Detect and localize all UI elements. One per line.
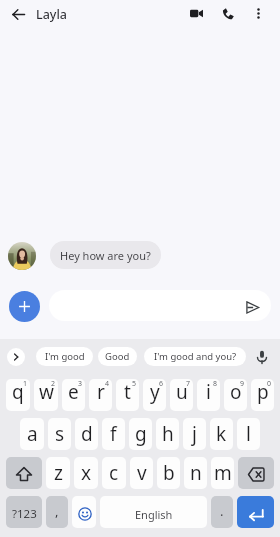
staticText: k: [216, 421, 227, 447]
staticText: j: [192, 421, 197, 447]
staticText: 6: [159, 379, 164, 389]
button[interactable]: 8: [197, 379, 220, 411]
staticText: o: [230, 379, 242, 405]
button[interactable]: 9: [224, 379, 247, 411]
button[interactable]: b: [157, 457, 180, 489]
button[interactable]: Expand suggestions: [7, 348, 25, 366]
staticText: I'm good and you?: [154, 350, 237, 363]
button[interactable]: I'm good and you?: [144, 347, 246, 366]
staticText: a: [27, 421, 38, 447]
staticText: y: [150, 379, 160, 405]
staticText: Good: [105, 350, 130, 363]
button[interactable]: 5: [116, 379, 139, 411]
button[interactable]: ?123: [6, 496, 42, 528]
button[interactable]: I'm good: [36, 347, 93, 366]
staticText: e: [68, 379, 79, 405]
staticText: v: [137, 460, 147, 486]
staticText: u: [176, 379, 188, 405]
staticText: I'm good: [45, 350, 85, 363]
button[interactable]: Send: [49, 290, 271, 321]
staticText: p: [257, 379, 269, 405]
button[interactable]: x: [74, 457, 98, 489]
button[interactable]: More options: [246, 1, 270, 25]
staticText: s: [55, 421, 65, 447]
button[interactable]: Send: [242, 297, 262, 317]
button[interactable]: l: [237, 418, 260, 450]
button[interactable]: 3: [62, 379, 85, 411]
button[interactable]: 7: [170, 379, 193, 411]
button[interactable]: d: [75, 418, 98, 450]
button[interactable]: .: [211, 496, 233, 528]
staticText: h: [162, 421, 174, 447]
button[interactable]: h: [156, 418, 179, 450]
button[interactable]: 0: [251, 379, 274, 411]
staticText: t: [124, 379, 131, 405]
staticText: z: [54, 460, 63, 486]
button[interactable]: f: [102, 418, 125, 450]
button[interactable]: Hey how are you?: [50, 241, 161, 269]
staticText: ,: [55, 502, 59, 520]
staticText: English: [135, 507, 173, 522]
button[interactable]: z: [46, 457, 70, 489]
staticText: 2: [51, 379, 56, 389]
button[interactable]: Add attachment: [9, 291, 40, 322]
button[interactable]: Shift: [6, 457, 42, 489]
staticText: ?123: [12, 506, 37, 522]
button[interactable]: g: [129, 418, 152, 450]
button[interactable]: 2: [34, 379, 58, 411]
button[interactable]: n: [184, 457, 207, 489]
staticText: .: [220, 502, 224, 520]
button[interactable]: Emoji: [72, 496, 96, 528]
staticText: 1: [23, 379, 28, 389]
button[interactable]: English: [100, 496, 207, 528]
staticText: 3: [78, 379, 83, 389]
button[interactable]: 6: [143, 379, 166, 411]
button[interactable]: k: [210, 418, 233, 450]
staticText: Layla: [36, 6, 67, 23]
staticText: 9: [240, 379, 245, 389]
button[interactable]: Video call: [184, 1, 208, 25]
staticText: n: [190, 460, 202, 486]
staticText: g: [135, 421, 147, 447]
staticText: 4: [105, 379, 110, 389]
button[interactable]: Layla: [36, 0, 67, 28]
staticText: b: [163, 460, 175, 486]
button[interactable]: v: [130, 457, 153, 489]
button[interactable]: 4: [89, 379, 112, 411]
staticText: x: [81, 460, 92, 486]
button[interactable]: Voice input: [253, 348, 271, 366]
button[interactable]: 1: [6, 379, 30, 411]
staticText: q: [12, 379, 24, 405]
button[interactable]: m: [211, 457, 234, 489]
staticText: Hey how are you?: [60, 248, 151, 263]
button[interactable]: ,: [46, 496, 68, 528]
button[interactable]: Back: [6, 2, 30, 26]
staticText: w: [39, 379, 54, 405]
staticText: 0: [267, 379, 272, 389]
button[interactable]: Call: [216, 1, 240, 25]
staticText: 8: [213, 379, 218, 389]
staticText: c: [109, 460, 119, 486]
button[interactable]: a: [20, 418, 44, 450]
staticText: m: [214, 460, 232, 486]
button[interactable]: j: [183, 418, 206, 450]
button[interactable]: Good: [98, 347, 137, 366]
button[interactable]: c: [102, 457, 126, 489]
button[interactable]: Backspace: [238, 457, 274, 489]
staticText: f: [110, 421, 117, 447]
button[interactable]: Enter: [237, 496, 274, 528]
staticText: r: [97, 379, 105, 405]
staticText: d: [81, 421, 93, 447]
staticText: i: [206, 379, 211, 405]
staticText: l: [246, 421, 251, 447]
staticText: 7: [186, 379, 191, 389]
staticText: 5: [132, 379, 137, 389]
button[interactable]: s: [48, 418, 71, 450]
